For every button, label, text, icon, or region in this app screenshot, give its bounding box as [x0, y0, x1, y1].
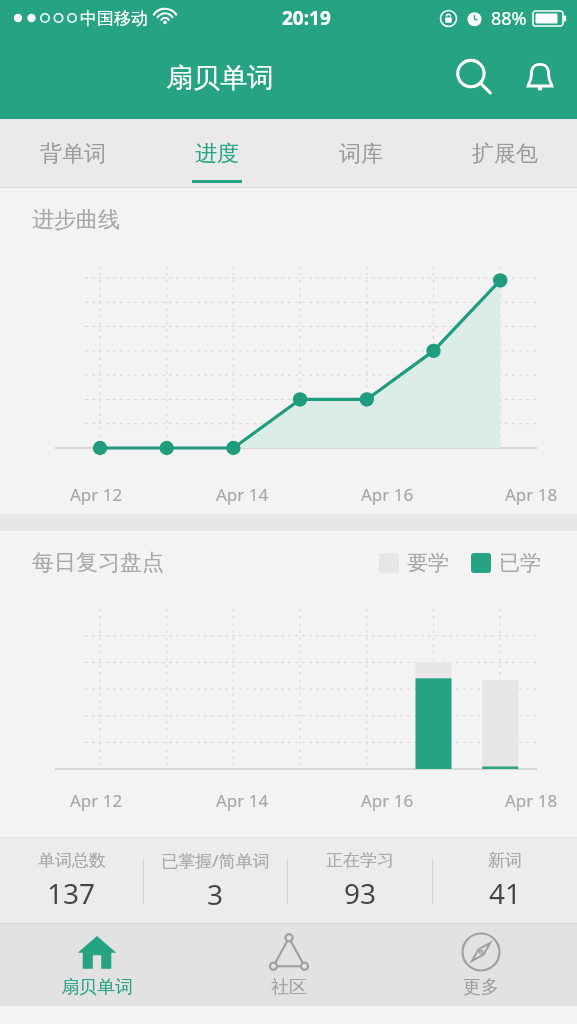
staticText: 20:19	[282, 5, 331, 31]
staticText: 88%	[491, 6, 527, 31]
staticText: Apr 18	[505, 789, 558, 812]
staticText: 新词	[488, 850, 522, 871]
button[interactable]: 已掌握/简单词	[144, 839, 287, 923]
staticText: Apr 14	[216, 483, 269, 506]
staticText: Apr 14	[216, 789, 269, 812]
button[interactable]: 更多	[385, 924, 577, 1006]
staticText: 要学	[407, 550, 449, 576]
staticText: 正在学习	[326, 850, 394, 871]
staticText: 137	[47, 874, 96, 912]
staticText: 已学	[499, 550, 541, 576]
button[interactable]: 扇贝单词	[0, 924, 193, 1006]
staticText: 41	[489, 874, 522, 912]
button[interactable]: Notifications	[507, 45, 573, 111]
button[interactable]: 进度	[145, 119, 289, 188]
staticText: 社区	[271, 976, 307, 999]
staticText: Apr 16	[361, 483, 414, 506]
staticText: Apr 18	[505, 483, 558, 506]
button[interactable]: 新词	[433, 839, 577, 923]
staticText: Apr 12	[70, 789, 123, 812]
staticText: 进度	[195, 140, 239, 168]
button[interactable]: 社区	[193, 924, 385, 1006]
staticText: Apr 16	[361, 789, 414, 812]
staticText: 词库	[339, 140, 383, 168]
button[interactable]: 词库	[289, 119, 433, 188]
staticText: 中国移动	[80, 8, 148, 29]
button[interactable]: 扩展包	[433, 119, 577, 188]
staticText: 更多	[463, 976, 499, 999]
staticText: 扇贝单词	[61, 976, 133, 999]
staticText: Apr 12	[70, 483, 123, 506]
button[interactable]: Search	[441, 45, 507, 111]
staticText: 扇贝单词	[166, 61, 274, 95]
button[interactable]: 单词总数	[0, 839, 143, 923]
button[interactable]: 正在学习	[288, 839, 432, 923]
staticText: 93	[344, 874, 377, 912]
staticText: 背单词	[40, 140, 106, 168]
staticText: 进步曲线	[32, 206, 120, 234]
staticText: 3	[207, 875, 224, 913]
staticText: 单词总数	[38, 850, 106, 871]
staticText: 已掌握/简单词	[161, 849, 270, 872]
staticText: 每日复习盘点	[32, 549, 164, 577]
button[interactable]: 背单词	[0, 119, 145, 188]
staticText: 扩展包	[472, 140, 538, 168]
